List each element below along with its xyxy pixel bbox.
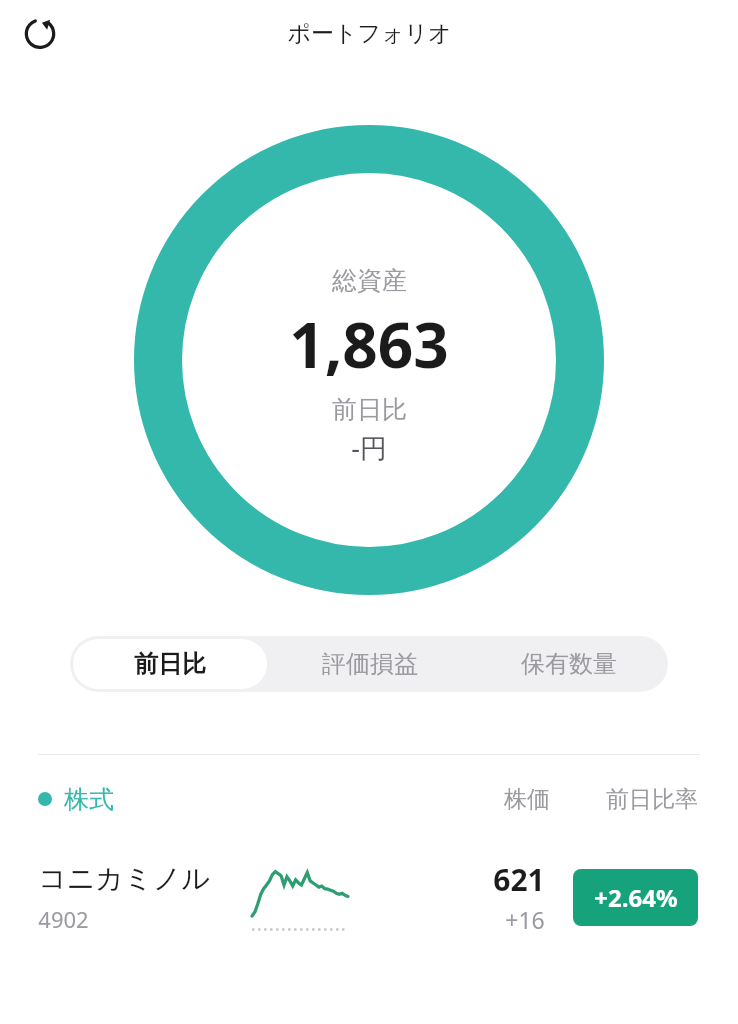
staticText: 621 bbox=[493, 859, 545, 900]
staticText: 前日比 bbox=[134, 649, 206, 679]
button[interactable]: Refresh bbox=[14, 7, 66, 59]
button[interactable]: コニカミノル bbox=[0, 843, 738, 951]
staticText: -円 bbox=[351, 429, 387, 466]
staticText: コニカミノル bbox=[38, 861, 210, 896]
staticText: 総資産 bbox=[332, 265, 407, 296]
staticText: ポートフォリオ bbox=[287, 19, 452, 48]
staticText: 株価 bbox=[504, 785, 550, 814]
staticText: 前日比 bbox=[332, 394, 407, 425]
staticText: 1,863 bbox=[289, 302, 449, 386]
staticText: +2.64% bbox=[594, 881, 678, 914]
staticText: 4902 bbox=[38, 904, 89, 934]
button[interactable]: 評価損益 bbox=[273, 639, 466, 689]
staticText: 前日比率 bbox=[606, 785, 698, 814]
staticText: 評価損益 bbox=[322, 649, 418, 679]
button[interactable]: +2.64% bbox=[573, 869, 698, 926]
staticText: +16 bbox=[505, 904, 545, 935]
button[interactable]: 保有数量 bbox=[472, 639, 665, 689]
staticText: 株式 bbox=[64, 784, 114, 815]
button[interactable]: 前日比 bbox=[73, 639, 267, 689]
staticText: 保有数量 bbox=[521, 649, 617, 679]
